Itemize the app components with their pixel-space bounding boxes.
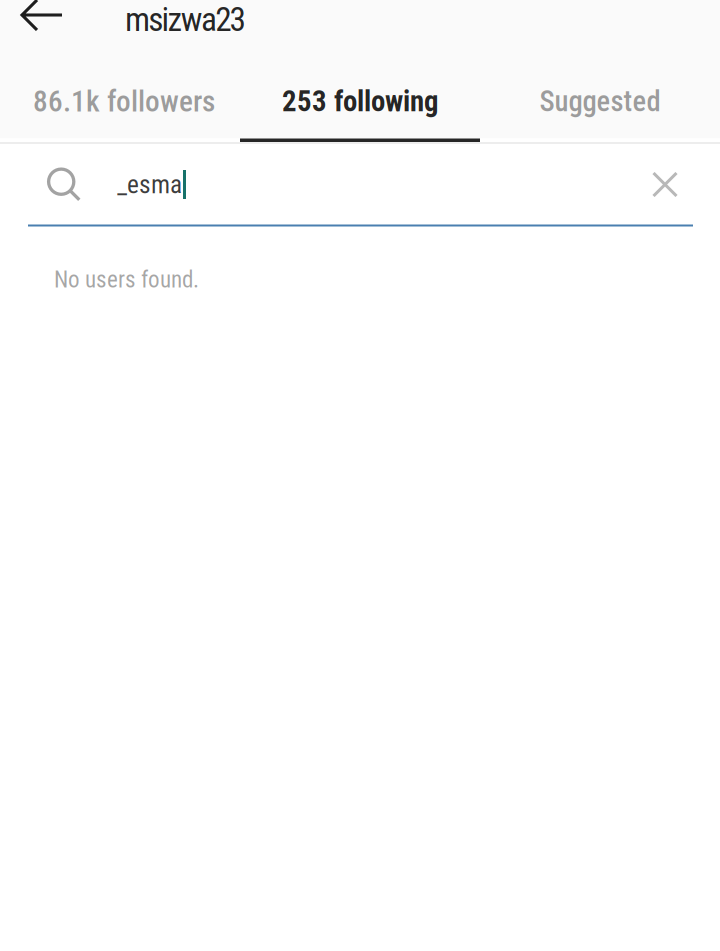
staticText: 253 following: [282, 85, 438, 118]
staticText: Suggested: [539, 85, 660, 118]
button[interactable]: 253 following: [240, 55, 480, 142]
staticText: _esma: [117, 170, 182, 199]
staticText: 86.1k followers: [33, 84, 215, 119]
button[interactable]: Clear search: [629, 159, 701, 209]
staticText: No users found.: [54, 266, 199, 293]
staticText: msizwa23: [125, 0, 245, 39]
button[interactable]: Suggested: [480, 55, 720, 142]
button[interactable]: 86.1k followers: [0, 55, 240, 142]
button[interactable]: Back: [0, 0, 84, 31]
